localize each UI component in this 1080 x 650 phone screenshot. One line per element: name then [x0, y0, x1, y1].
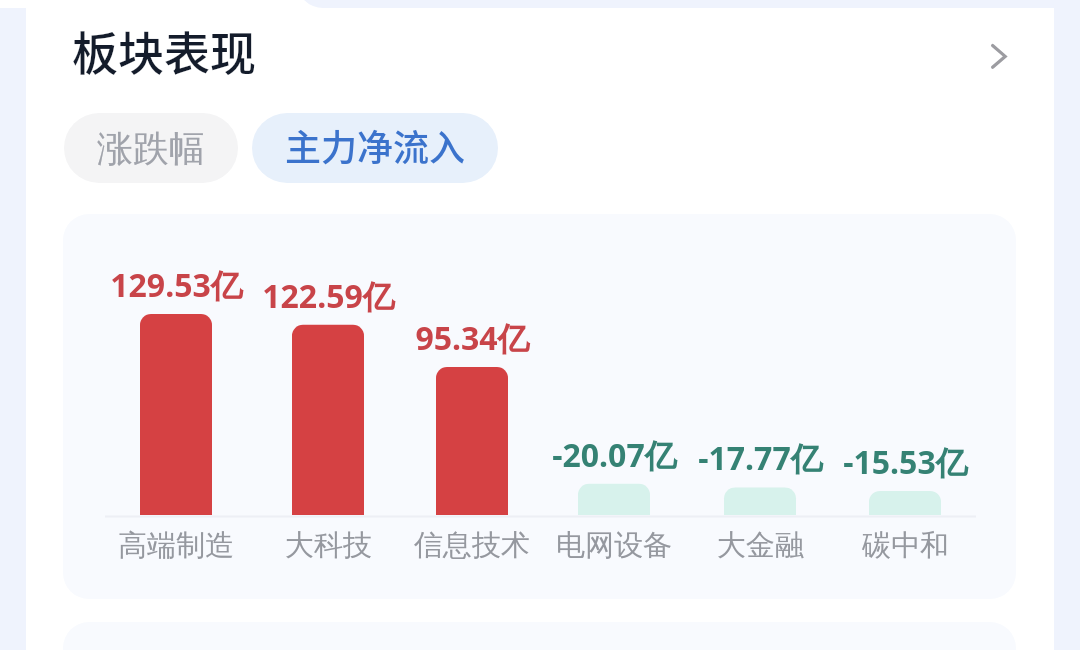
- staticText: -15.53亿: [843, 440, 968, 484]
- staticText: 大金融: [717, 527, 804, 564]
- staticText: -17.77亿: [698, 436, 823, 480]
- staticText: 129.53亿: [110, 263, 243, 307]
- staticText: 板块表现: [72, 17, 256, 84]
- staticText: 电网设备: [556, 527, 672, 564]
- staticText: 大科技: [285, 527, 372, 564]
- button[interactable]: 涨跌幅: [64, 113, 238, 183]
- staticText: 涨跌幅: [97, 126, 205, 171]
- button[interactable]: 板块表现: [26, 8, 1054, 104]
- staticText: 122.59亿: [262, 274, 395, 318]
- staticText: -20.07亿: [552, 433, 677, 477]
- staticText: 高端制造: [118, 527, 234, 564]
- button[interactable]: 主力净流入: [252, 113, 498, 183]
- other: 查看更多板块表现: [960, 20, 1036, 92]
- staticText: 主力净流入: [285, 119, 466, 171]
- staticText: 95.34亿: [415, 316, 530, 360]
- staticText: 信息技术: [414, 527, 530, 564]
- staticText: 碳中和: [862, 527, 949, 564]
